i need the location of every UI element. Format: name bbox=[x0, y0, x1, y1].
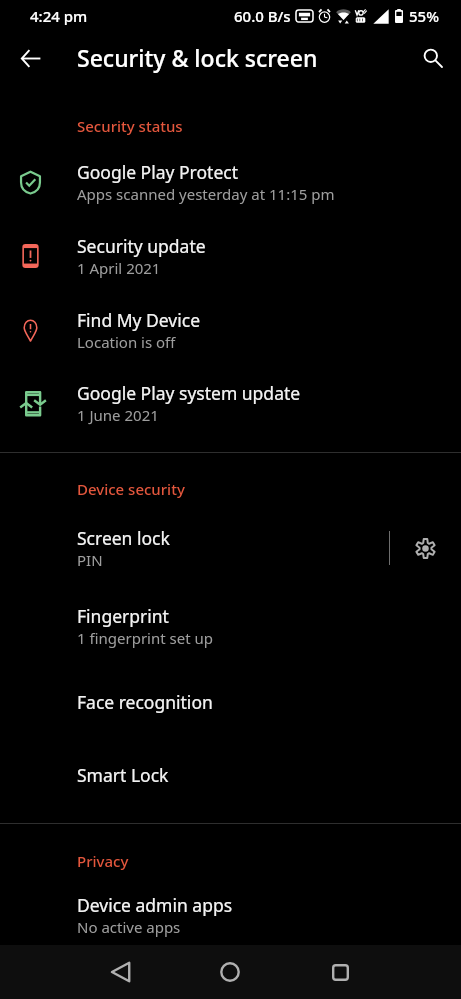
staticText: Security update bbox=[77, 234, 206, 258]
staticText: 60.0 B/s bbox=[234, 6, 291, 26]
button[interactable]: Fingerprint bbox=[0, 587, 461, 665]
button[interactable]: Search bbox=[404, 31, 461, 85]
button[interactable]: Smart Lock bbox=[0, 738, 461, 811]
staticText: PIN bbox=[77, 550, 103, 570]
button[interactable]: Back bbox=[64, 945, 176, 999]
staticText: Find My Device bbox=[77, 308, 201, 332]
button[interactable]: Screen lock settings bbox=[390, 509, 461, 587]
staticText: 1 fingerprint set up bbox=[77, 628, 213, 648]
staticText: Security & lock screen bbox=[77, 42, 318, 73]
button[interactable]: Google Play Protect bbox=[0, 145, 461, 219]
button[interactable]: Home bbox=[174, 945, 286, 999]
staticText: Google Play system update bbox=[77, 381, 301, 405]
button[interactable]: Security update bbox=[0, 219, 461, 293]
staticText: Apps scanned yesterday at 11:15 pm bbox=[77, 184, 335, 204]
staticText: 1 April 2021 bbox=[77, 258, 161, 278]
staticText: 4:24 pm bbox=[30, 6, 88, 26]
staticText: Face recognition bbox=[77, 690, 213, 714]
staticText: 1 June 2021 bbox=[77, 405, 159, 425]
button[interactable]: Google Play system update bbox=[0, 366, 461, 440]
staticText: Privacy bbox=[77, 851, 129, 871]
button[interactable]: Find My Device bbox=[0, 293, 461, 366]
staticText: 55% bbox=[409, 6, 439, 26]
button[interactable]: Face recognition bbox=[0, 665, 461, 738]
staticText: Device security bbox=[77, 479, 185, 499]
staticText: No active apps bbox=[77, 917, 181, 937]
staticText: Screen lock bbox=[77, 526, 170, 550]
button[interactable]: Device admin apps bbox=[0, 876, 461, 954]
staticText: Google Play Protect bbox=[77, 160, 238, 184]
button[interactable]: Screen lock bbox=[0, 509, 461, 587]
staticText: Location is off bbox=[77, 332, 176, 352]
button[interactable]: Recents bbox=[284, 945, 396, 999]
button[interactable]: Back bbox=[0, 31, 61, 85]
staticText: Device admin apps bbox=[77, 893, 233, 917]
staticText: Fingerprint bbox=[77, 604, 169, 628]
staticText: Security status bbox=[77, 116, 183, 136]
staticText: Smart Lock bbox=[77, 763, 169, 787]
